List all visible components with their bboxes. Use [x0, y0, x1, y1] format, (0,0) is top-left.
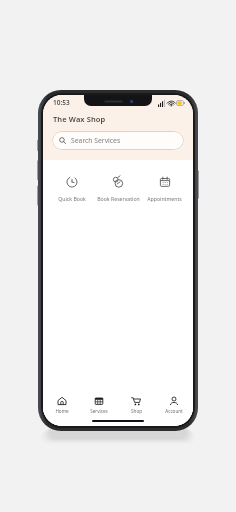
staticText: Appointments — [147, 195, 182, 202]
staticText: Services — [90, 408, 108, 414]
button[interactable]: Account — [155, 392, 193, 418]
staticText: Home — [55, 408, 69, 414]
button[interactable]: Appointments — [143, 173, 186, 204]
button[interactable]: Home — [43, 392, 80, 418]
staticText: Quick Book — [58, 195, 86, 202]
staticText: Account — [165, 408, 183, 414]
button[interactable]: Book Reservation — [93, 173, 143, 204]
button[interactable]: Services — [80, 392, 117, 418]
staticText: 10:53 — [53, 98, 70, 107]
button[interactable]: Shop — [117, 392, 155, 418]
button[interactable]: Quick Book — [50, 173, 93, 204]
staticText: Shop — [131, 408, 142, 414]
button[interactable]: Search Services — [52, 131, 184, 150]
staticText: The Wax Shop — [53, 114, 106, 124]
staticText: Search Services — [71, 136, 121, 145]
staticText: Book Reservation — [97, 195, 140, 202]
